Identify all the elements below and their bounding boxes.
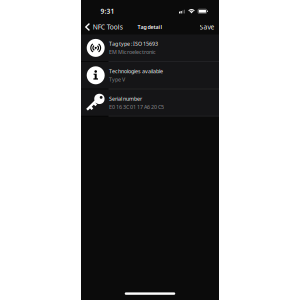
button[interactable]: NFC Tools [81, 20, 123, 34]
staticText: Tag type : ISO 15693 [109, 40, 158, 47]
staticText: Serial number [109, 95, 142, 102]
button[interactable]: Serial number [81, 89, 219, 116]
staticText: E0 16 3C 01 17 A6 20 C5 [109, 103, 164, 110]
staticText: Type V [109, 76, 125, 83]
button[interactable]: Technologies available [81, 62, 219, 89]
staticText: Tag detail [137, 23, 162, 31]
staticText: Technologies available [109, 68, 163, 75]
staticText: 9:31 [100, 7, 114, 16]
staticText: NFC Tools [93, 23, 123, 31]
staticText: EM Microelectronic [109, 48, 156, 56]
button[interactable]: Save [200, 20, 219, 34]
staticText: Save [200, 23, 215, 31]
button[interactable]: Tag type : ISO 15693 [81, 34, 219, 62]
